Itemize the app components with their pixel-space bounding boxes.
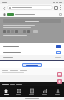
button[interactable] — [56, 45, 61, 48]
button[interactable]: Tabs — [54, 6, 58, 10]
button[interactable]: Stats — [38, 86, 51, 97]
button[interactable]: Library — [25, 86, 38, 97]
button[interactable] — [3, 19, 61, 23]
button[interactable]: Chat — [57, 72, 62, 77]
button[interactable] — [22, 63, 42, 67]
button[interactable]: Help — [57, 79, 62, 84]
button[interactable]: More options — [59, 5, 62, 10]
button[interactable]: Categories — [12, 86, 25, 97]
button[interactable] — [0, 49, 64, 55]
button[interactable]: Home — [0, 86, 12, 97]
button[interactable] — [56, 51, 61, 54]
button[interactable] — [7, 13, 14, 16]
button[interactable]: Profile — [51, 86, 64, 97]
button[interactable]: Home — [2, 12, 6, 16]
button[interactable]: Menu — [59, 13, 62, 16]
button[interactable] — [7, 5, 53, 10]
button[interactable] — [0, 43, 64, 49]
button[interactable]: Back — [2, 6, 6, 10]
button[interactable] — [0, 55, 64, 60]
